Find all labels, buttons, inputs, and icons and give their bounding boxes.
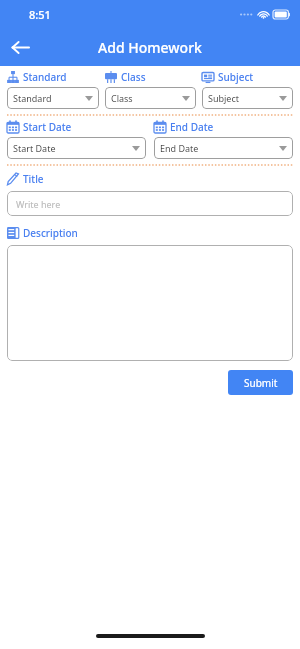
staticText: Add Homework [98,38,202,57]
staticText: Standard [23,70,67,84]
staticText: End Date [170,120,214,134]
staticText: Start Date [13,142,56,154]
button[interactable]: Submit [228,370,293,395]
staticText: Description [23,226,78,240]
button[interactable]: Start Date [7,137,146,159]
staticText: Standard [13,92,52,104]
staticText: Write here [16,198,61,210]
button[interactable]: End Date [154,137,293,159]
button[interactable]: Back [4,31,36,63]
staticText: Subject [218,70,254,84]
staticText: 8:51 [29,7,51,22]
button[interactable]: Subject [202,87,293,109]
staticText: Class [111,92,133,104]
staticText: Submit [244,376,278,390]
staticText: Subject [208,92,240,104]
button[interactable] [7,245,293,361]
staticText: Title [23,172,44,186]
staticText: End Date [160,142,199,154]
staticText: Start Date [23,120,72,134]
button[interactable]: Standard [7,87,99,109]
button[interactable]: Class [105,87,196,109]
button[interactable]: Write here [7,191,293,216]
staticText: Class [121,70,146,84]
